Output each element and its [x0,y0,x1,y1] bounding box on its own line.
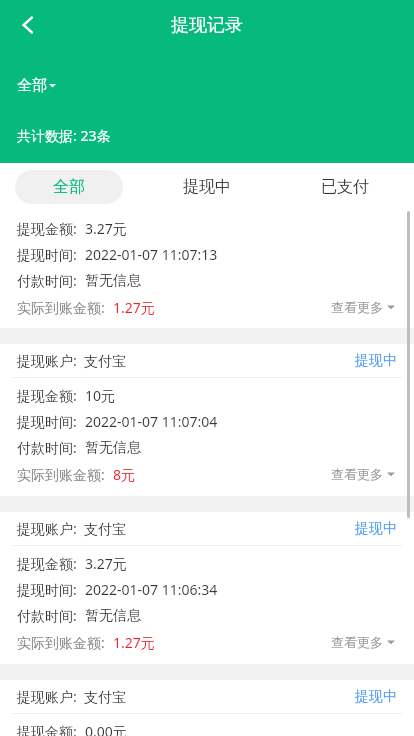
staticText: 共计数据: 23条 [17,126,111,145]
button[interactable]: 全部 [15,170,123,204]
staticText: 付款时间: [17,606,85,625]
staticText: 暂无信息 [85,607,141,625]
staticText: 提现账户: 支付宝 [17,351,127,370]
button[interactable]: 提现账户: 支付宝 [0,680,414,736]
staticText: 付款时间: [17,271,85,290]
staticText: 查看更多 [331,466,383,482]
staticText: 付款时间: [17,438,85,457]
button[interactable]: 全部 [17,76,56,95]
staticText: 提现中 [355,352,397,370]
staticText: 提现时间: [17,245,85,264]
button[interactable]: 提现中 [138,170,276,204]
staticText: 提现中 [183,177,231,197]
staticText: 提现中 [355,688,397,706]
staticText: 全部 [53,177,85,197]
staticText: 提现金额: [17,722,85,736]
staticText: 2022-01-07 11:07:13 [85,245,218,264]
staticText: 提现记录 [171,14,243,37]
staticText: 提现时间: [17,412,85,431]
button[interactable]: 已支付 [276,170,414,204]
button[interactable]: 提现金额: [0,211,414,328]
staticText: 查看更多 [331,299,383,315]
staticText: 实际到账金额: [17,465,113,484]
staticText: 10元 [85,386,116,405]
button[interactable]: 提现账户: 支付宝 [0,512,414,664]
staticText: 2022-01-07 11:06:34 [85,580,218,599]
staticText: 提现金额: [17,386,85,405]
staticText: 3.27元 [85,554,127,573]
staticText: 1.27元 [113,298,155,317]
button[interactable]: 查看更多 [329,632,397,652]
staticText: 0.00元 [85,722,127,736]
staticText: 提现时间: [17,580,85,599]
button[interactable]: 查看更多 [329,464,397,484]
staticText: 提现金额: [17,219,85,238]
staticText: 实际到账金额: [17,298,113,317]
staticText: 提现中 [355,520,397,538]
staticText: 查看更多 [331,634,383,650]
staticText: 提现金额: [17,554,85,573]
staticText: 暂无信息 [85,439,141,457]
button[interactable]: 查看更多 [329,297,397,317]
staticText: 2022-01-07 11:07:04 [85,412,218,431]
staticText: 8元 [113,465,136,484]
staticText: 1.27元 [113,633,155,652]
staticText: 提现账户: 支付宝 [17,687,127,706]
staticText: 实际到账金额: [17,633,113,652]
button[interactable]: Back [8,5,48,45]
staticText: 提现账户: 支付宝 [17,519,127,538]
staticText: 暂无信息 [85,272,141,290]
button[interactable]: 提现账户: 支付宝 [0,344,414,496]
staticText: 3.27元 [85,219,127,238]
staticText: 已支付 [321,177,369,197]
staticText: 全部 [17,76,47,95]
